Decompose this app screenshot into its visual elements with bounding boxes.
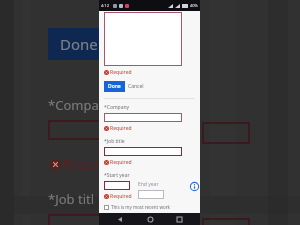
staticText: *Job titl: [48, 190, 95, 208]
staticText: Requir: [63, 155, 104, 173]
staticText: *Start year: [104, 172, 130, 179]
staticText: 40%: [190, 3, 198, 8]
button[interactable]: [104, 113, 182, 122]
staticText: Done: [108, 83, 121, 90]
staticText: End year: [138, 181, 159, 188]
button[interactable]: [104, 12, 182, 66]
staticText: Done: [60, 34, 98, 54]
button[interactable]: Home: [145, 214, 155, 224]
staticText: Required: [110, 193, 132, 200]
button[interactable]: Done: [48, 28, 110, 60]
button[interactable]: This is my most recent work: [104, 204, 170, 210]
staticText: This is my most recent work: [111, 204, 170, 210]
staticText: 4:12: [101, 3, 109, 8]
staticText: *Compa: [48, 96, 99, 114]
staticText: *Job title: [104, 138, 125, 145]
button[interactable]: Cancel: [125, 81, 147, 92]
staticText: Required: [110, 159, 132, 166]
button[interactable]: Done: [104, 81, 125, 92]
button[interactable]: [138, 190, 164, 199]
staticText: *Company: [104, 104, 130, 111]
button[interactable]: [104, 147, 182, 156]
button[interactable]: Help: [190, 182, 199, 191]
staticText: Required: [110, 69, 132, 76]
button[interactable]: Back: [115, 214, 125, 224]
staticText: Required: [110, 125, 132, 132]
button[interactable]: [104, 181, 130, 190]
button[interactable]: Recent apps: [174, 214, 184, 224]
staticText: Cancel: [128, 83, 144, 90]
